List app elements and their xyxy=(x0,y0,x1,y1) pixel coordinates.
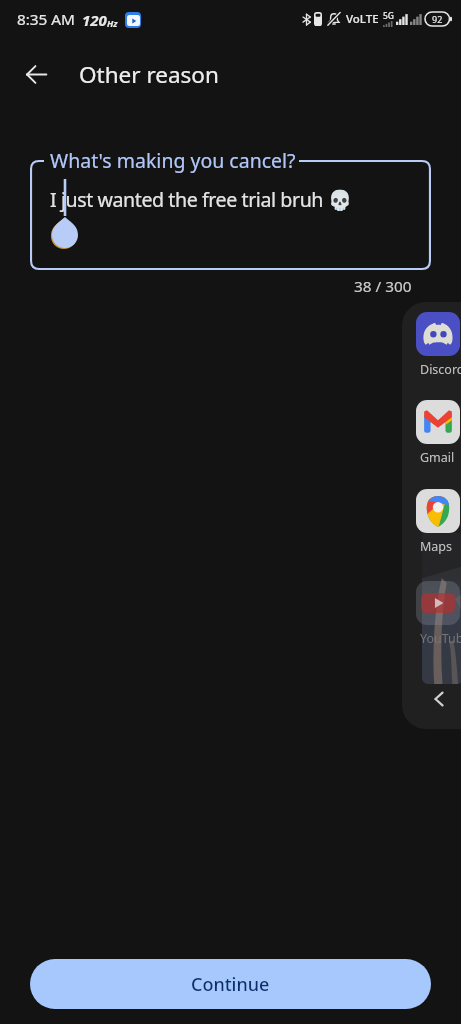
staticText: Hz xyxy=(107,17,118,29)
button[interactable]: Maps xyxy=(416,489,460,555)
staticText: 5G xyxy=(383,10,395,22)
staticText: 38 / 300 xyxy=(354,276,412,297)
button[interactable]: YouTube xyxy=(416,581,461,647)
staticText: 120 xyxy=(82,10,107,30)
staticText: YouTube xyxy=(420,630,461,647)
staticText: Continue xyxy=(191,972,270,997)
button[interactable]: Discord xyxy=(416,312,461,378)
staticText: 92 xyxy=(432,13,443,25)
staticText: VoLTE xyxy=(346,11,379,27)
staticText: I just wanted the free trial bruh 💀 xyxy=(50,186,352,213)
button[interactable]: Continue xyxy=(30,959,431,1009)
button[interactable]: Back xyxy=(12,50,60,98)
button[interactable]: Gmail xyxy=(416,400,460,466)
staticText: Gmail xyxy=(420,449,455,466)
button[interactable]: Back xyxy=(424,684,454,714)
staticText: What's making you cancel? xyxy=(50,147,296,174)
staticText: Other reason xyxy=(79,59,219,90)
staticText: Maps xyxy=(420,538,453,555)
staticText: 8:35 AM xyxy=(17,9,75,30)
staticText: Discord xyxy=(420,361,461,378)
